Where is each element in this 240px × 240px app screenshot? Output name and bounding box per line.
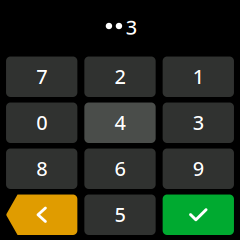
staticText: 9 xyxy=(193,155,204,181)
button[interactable]: 9 xyxy=(163,148,234,189)
staticText: 3 xyxy=(126,14,137,40)
button[interactable]: 4 xyxy=(84,102,156,143)
staticText: 1 xyxy=(193,63,204,89)
staticText: 7 xyxy=(36,63,47,89)
button[interactable]: Confirm xyxy=(163,194,234,235)
staticText: 5 xyxy=(114,201,125,227)
button[interactable]: 1 xyxy=(163,56,234,97)
staticText: 2 xyxy=(114,63,125,89)
button[interactable]: 6 xyxy=(84,148,156,189)
button[interactable]: Delete xyxy=(6,194,77,235)
button[interactable]: 8 xyxy=(6,148,77,189)
button[interactable]: 5 xyxy=(84,194,156,235)
staticText: 0 xyxy=(36,109,47,135)
staticText: 8 xyxy=(36,155,47,181)
staticText: 6 xyxy=(114,155,125,181)
staticText: 4 xyxy=(114,109,125,135)
button[interactable]: 7 xyxy=(6,56,77,97)
button[interactable]: 2 xyxy=(84,56,156,97)
button[interactable]: 3 xyxy=(163,102,234,143)
button[interactable]: 0 xyxy=(6,102,77,143)
staticText: 3 xyxy=(193,109,204,135)
